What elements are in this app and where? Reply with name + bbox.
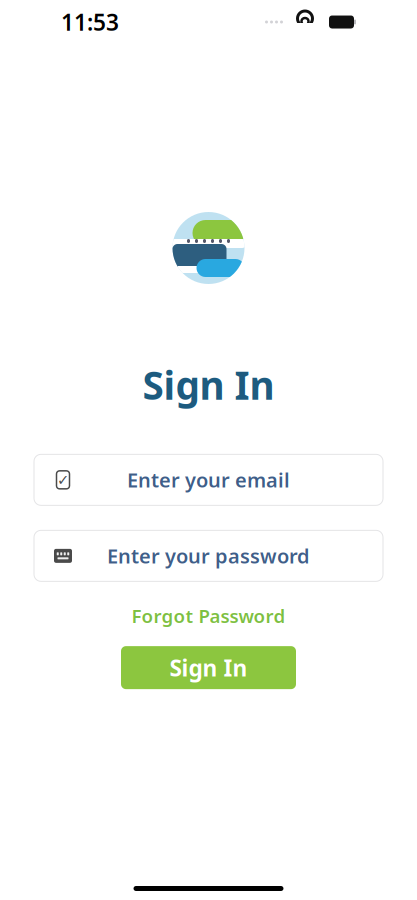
button[interactable]: ✓ [34, 454, 383, 505]
staticText: Enter your email [127, 467, 290, 493]
staticText: Forgot Password [131, 603, 285, 628]
button[interactable]: Sign In [121, 646, 296, 689]
staticText: Sign In [169, 653, 247, 683]
staticText: Sign In [142, 359, 274, 410]
staticText: ✓ [57, 471, 69, 488]
button[interactable]: Enter your password [34, 530, 383, 581]
staticText: Enter your password [107, 543, 310, 569]
staticText: 11:53 [61, 7, 119, 37]
button[interactable]: Forgot Password [123, 599, 293, 632]
